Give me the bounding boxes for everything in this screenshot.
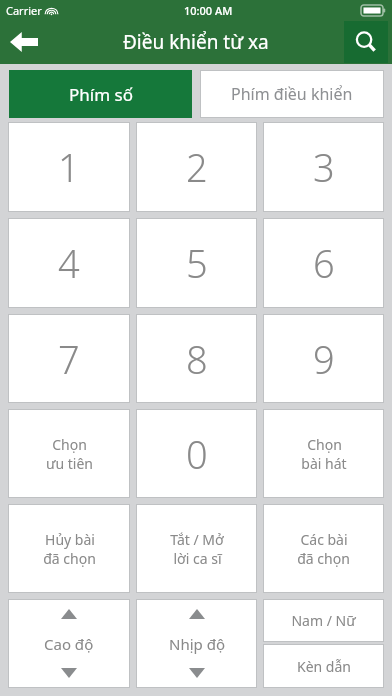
staticText: Chọn [52,435,87,454]
button[interactable]: Search [344,21,388,63]
button[interactable]: Kèn dẫn [263,644,384,688]
staticText: Chọn [307,435,342,454]
button[interactable]: 5 [136,218,257,308]
staticText: lời ca sĩ [173,549,222,568]
staticText: 5 [186,237,208,289]
staticText: 0 [186,428,208,480]
staticText: 10:00 AM [184,3,233,18]
button[interactable]: Nam / Nữ [263,599,384,642]
staticText: ưu tiên [46,454,93,473]
staticText: Nam / Nữ [291,611,356,630]
button[interactable]: Tắt / Mở [136,504,257,593]
staticText: 4 [58,237,80,289]
staticText: Hủy bài [45,530,95,549]
button[interactable]: 6 [263,218,384,308]
button[interactable]: Phím số [9,70,192,118]
staticText: Carrier [6,3,42,18]
staticText: Tắt / Mở [170,530,224,549]
button[interactable]: Hủy bài [8,504,130,593]
staticText: bài hát [301,454,347,473]
button[interactable]: 9 [263,314,384,403]
staticText: Nhịp độ [169,634,225,654]
button[interactable]: Chọn [8,409,130,498]
staticText: 7 [58,333,80,385]
staticText: Cao độ [44,634,94,654]
staticText: 2 [186,141,208,193]
button[interactable]: 2 [136,122,257,212]
button[interactable]: 7 [8,314,130,403]
staticText: Các bài [300,530,348,549]
button[interactable]: 8 [136,314,257,403]
button[interactable]: 0 [136,409,257,498]
button[interactable]: Chọn [263,409,384,498]
staticText: Phím số [69,83,133,106]
staticText: 1 [58,141,80,193]
staticText: 6 [313,237,335,289]
button[interactable]: Phím điều khiển [200,70,384,118]
staticText: 8 [186,333,208,385]
staticText: Điều khiển từ xa [123,29,269,55]
button[interactable]: Back [0,20,48,64]
staticText: đã chọn [43,549,96,568]
staticText: Phím điều khiển [231,83,353,105]
button[interactable]: Các bài [263,504,384,593]
staticText: đã chọn [297,549,350,568]
staticText: 9 [313,333,335,385]
staticText: 3 [313,141,335,193]
button[interactable]: 4 [8,218,130,308]
button[interactable]: Nhịp độ [136,599,257,688]
staticText: Kèn dẫn [297,657,351,676]
button[interactable]: 1 [8,122,130,212]
button[interactable]: 3 [263,122,384,212]
button[interactable]: Cao độ [8,599,130,688]
